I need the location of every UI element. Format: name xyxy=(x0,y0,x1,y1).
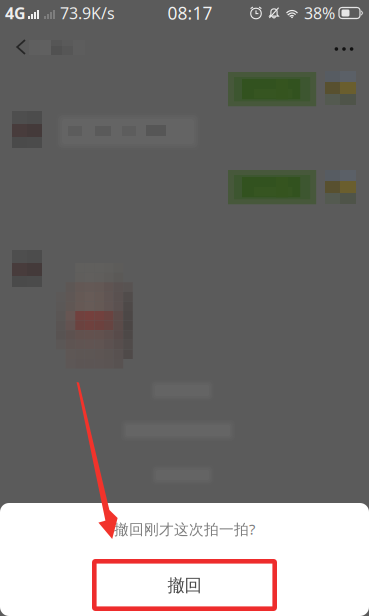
staticText: 38% xyxy=(304,2,335,24)
staticText: 撤回刚才这次拍一拍? xyxy=(114,519,255,539)
button[interactable]: 撤回 xyxy=(0,555,369,616)
staticText: 撤回 xyxy=(167,575,201,596)
button[interactable]: Back xyxy=(2,26,40,68)
button[interactable]: More xyxy=(323,35,365,63)
staticText: 08:17 xyxy=(167,1,212,24)
staticText: 73.9K/s xyxy=(60,2,115,24)
staticText: 4G xyxy=(5,2,26,24)
